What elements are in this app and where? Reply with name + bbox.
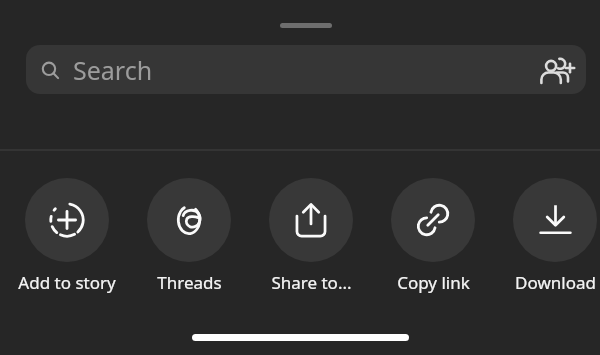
button[interactable]: Add to story (6, 178, 128, 294)
staticText: Share to... (271, 271, 352, 294)
staticText: Download (515, 271, 596, 294)
button[interactable]: Share to... (250, 178, 372, 294)
staticText: Add to story (18, 271, 116, 294)
staticText: Threads (157, 271, 222, 294)
button[interactable]: Threads (128, 178, 250, 294)
staticText: Copy link (397, 271, 470, 294)
button[interactable]: Search (26, 45, 586, 94)
button[interactable]: Download (494, 178, 600, 294)
staticText: Search (73, 53, 153, 87)
button[interactable]: Copy link (372, 178, 494, 294)
button[interactable]: Add people (538, 51, 576, 89)
